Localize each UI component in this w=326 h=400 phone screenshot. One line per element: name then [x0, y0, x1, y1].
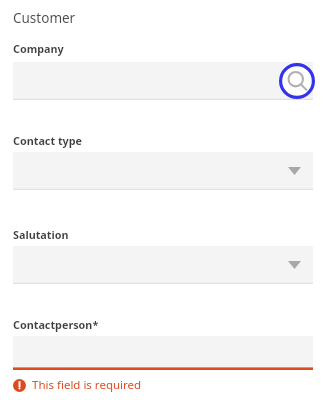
button[interactable]: Open contact type list — [279, 152, 309, 190]
staticText: Company — [13, 41, 64, 56]
button[interactable]: Open salutation list — [279, 246, 309, 284]
staticText: Salutation — [13, 227, 69, 242]
staticText: Customer — [13, 9, 76, 27]
staticText: This field is required — [32, 377, 142, 393]
button[interactable]: Search company — [279, 63, 315, 99]
button[interactable] — [13, 152, 313, 190]
button[interactable] — [13, 336, 313, 370]
staticText: Contact type — [13, 133, 83, 148]
staticText: Contactperson* — [13, 317, 99, 332]
button[interactable] — [13, 246, 313, 284]
button[interactable] — [13, 62, 313, 100]
